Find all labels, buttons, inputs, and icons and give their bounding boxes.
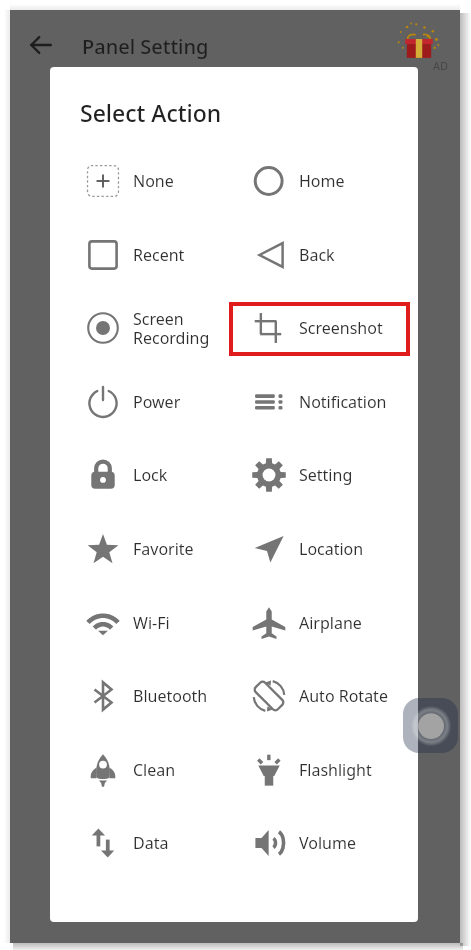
staticText: Panel Setting (82, 33, 209, 60)
button[interactable] (75, 669, 233, 723)
button[interactable] (75, 522, 233, 576)
staticText: Setting (299, 464, 353, 486)
staticText: None (133, 170, 174, 192)
button[interactable] (241, 669, 399, 723)
button[interactable] (75, 816, 233, 870)
staticText: Home (299, 170, 345, 192)
button[interactable] (241, 816, 399, 870)
button[interactable]: Gift advertisement (396, 22, 442, 68)
button[interactable] (241, 448, 399, 502)
button[interactable] (241, 743, 399, 797)
staticText: Wi-Fi (133, 612, 170, 634)
staticText: Auto Rotate (299, 685, 388, 707)
staticText: Notification (299, 391, 387, 413)
staticText: Favorite (133, 538, 194, 560)
staticText: Airplane (299, 612, 362, 634)
staticText: Recent (133, 244, 185, 266)
button[interactable] (241, 375, 399, 429)
staticText: Flashlight (299, 759, 372, 781)
staticText: Back (299, 244, 335, 266)
button[interactable] (241, 301, 399, 355)
staticText: Data (133, 832, 169, 854)
button[interactable] (241, 154, 399, 208)
staticText: AD (433, 58, 449, 73)
staticText: Bluetooth (133, 685, 208, 707)
staticText: Screen Recording (133, 308, 210, 349)
button[interactable] (75, 448, 233, 502)
button[interactable]: Floating panel button (403, 698, 458, 753)
staticText: Lock (133, 464, 168, 486)
button[interactable] (241, 228, 399, 282)
button[interactable] (75, 154, 233, 208)
button[interactable] (241, 596, 399, 650)
button[interactable] (75, 228, 233, 282)
button[interactable] (75, 375, 233, 429)
staticText: Screenshot (299, 317, 383, 339)
staticText: Location (299, 538, 364, 560)
staticText: Volume (299, 832, 356, 854)
staticText: Select Action (80, 97, 222, 128)
staticText: Power (133, 391, 181, 413)
button[interactable] (75, 301, 233, 355)
button[interactable]: Back (26, 30, 56, 60)
button[interactable] (75, 596, 233, 650)
button[interactable] (75, 743, 233, 797)
button[interactable] (241, 522, 399, 576)
staticText: Clean (133, 759, 176, 781)
